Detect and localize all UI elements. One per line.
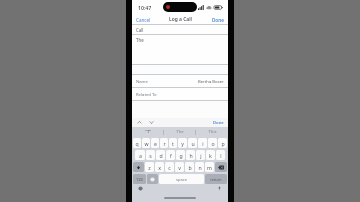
- staticText: g: [179, 152, 183, 159]
- staticText: m: [207, 164, 212, 171]
- button[interactable]: k: [206, 150, 215, 160]
- button[interactable]: Shift: [133, 162, 144, 172]
- button[interactable]: p: [218, 138, 227, 148]
- staticText: c: [168, 164, 171, 171]
- staticText: The: [176, 129, 184, 135]
- button[interactable]: u: [188, 138, 197, 148]
- staticText: Related To: [136, 92, 157, 98]
- staticText: w: [144, 140, 149, 147]
- staticText: u: [191, 140, 195, 147]
- staticText: Log a Call: [169, 16, 192, 23]
- button[interactable]: This: [196, 127, 228, 137]
- button[interactable]: n: [195, 162, 204, 172]
- staticText: n: [198, 164, 202, 171]
- button[interactable]: a: [135, 150, 145, 160]
- button[interactable]: w: [142, 138, 150, 148]
- staticText: e: [154, 140, 157, 147]
- staticText: s: [149, 152, 152, 159]
- staticText: Bertha Boxer: [198, 79, 224, 85]
- button[interactable]: "T": [132, 127, 164, 137]
- button[interactable]: Next field: [148, 119, 155, 126]
- staticText: d: [159, 152, 163, 159]
- staticText: Done: [212, 17, 224, 23]
- staticText: 10:47: [138, 4, 152, 11]
- button[interactable]: Done: [208, 15, 228, 25]
- staticText: Cancel: [136, 17, 151, 23]
- button[interactable]: g: [176, 150, 185, 160]
- staticText: j: [200, 152, 202, 159]
- staticText: q: [135, 140, 139, 147]
- button[interactable]: Switch keyboard: [138, 186, 143, 191]
- button[interactable]: space: [159, 174, 204, 184]
- staticText: x: [158, 164, 161, 171]
- staticText: Done: [213, 120, 224, 126]
- button[interactable]: Previous field: [136, 119, 143, 126]
- button[interactable]: x: [155, 162, 164, 172]
- button[interactable]: q: [133, 138, 141, 148]
- button[interactable]: Backspace: [215, 162, 227, 172]
- staticText: y: [181, 140, 184, 147]
- button[interactable]: e: [151, 138, 159, 148]
- staticText: return: [210, 177, 222, 182]
- button[interactable]: y: [178, 138, 187, 148]
- staticText: b: [188, 164, 192, 171]
- button[interactable]: i: [198, 138, 207, 148]
- staticText: a: [139, 152, 142, 159]
- button[interactable]: r: [160, 138, 168, 148]
- staticText: z: [148, 164, 151, 171]
- staticText: v: [178, 164, 181, 171]
- button[interactable]: m: [205, 162, 214, 172]
- button[interactable]: s: [146, 150, 155, 160]
- button[interactable]: v: [175, 162, 184, 172]
- staticText: t: [172, 140, 174, 147]
- button[interactable]: h: [186, 150, 195, 160]
- button[interactable]: 123: [133, 174, 146, 184]
- button[interactable]: c: [165, 162, 174, 172]
- button[interactable]: Dictation: [217, 186, 222, 191]
- staticText: p: [221, 140, 225, 147]
- staticText: Call: [136, 27, 144, 33]
- button[interactable]: l: [216, 150, 225, 160]
- staticText: k: [209, 152, 212, 159]
- button[interactable]: j: [196, 150, 205, 160]
- button[interactable]: f: [166, 150, 175, 160]
- button[interactable]: return: [205, 174, 227, 184]
- staticText: Name: [136, 79, 148, 85]
- staticText: f: [170, 152, 172, 159]
- staticText: The: [136, 37, 144, 43]
- button[interactable]: The: [164, 127, 196, 137]
- button[interactable]: Related To: [132, 88, 228, 101]
- staticText: r: [163, 140, 166, 147]
- staticText: h: [189, 152, 193, 159]
- button[interactable]: Emoji: [147, 174, 158, 184]
- staticText: o: [211, 140, 215, 147]
- button[interactable]: Call: [132, 25, 228, 35]
- button[interactable]: o: [208, 138, 217, 148]
- button[interactable]: Done: [209, 119, 228, 127]
- button[interactable]: b: [185, 162, 194, 172]
- staticText: space: [176, 177, 187, 182]
- button[interactable]: t: [169, 138, 177, 148]
- button[interactable]: z: [145, 162, 154, 172]
- button[interactable]: Name: [132, 75, 228, 88]
- staticText: i: [202, 140, 204, 147]
- button[interactable]: The: [132, 35, 228, 65]
- staticText: l: [220, 152, 222, 159]
- staticText: "T": [145, 129, 151, 135]
- button[interactable]: Cancel: [132, 15, 155, 25]
- button[interactable]: d: [156, 150, 165, 160]
- staticText: This: [208, 129, 217, 135]
- staticText: 123: [136, 177, 143, 182]
